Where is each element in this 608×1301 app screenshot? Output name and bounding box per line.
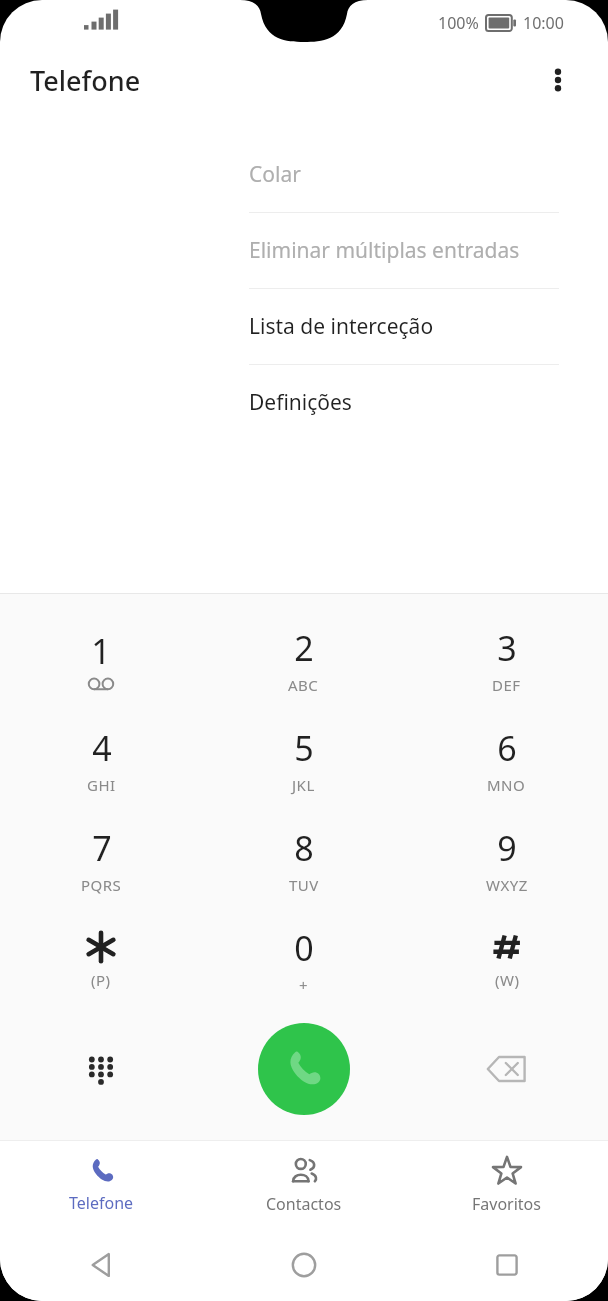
- staticText: 100%: [438, 12, 479, 34]
- button[interactable]: 7: [0, 810, 202, 910]
- staticText: PQRS: [81, 875, 122, 895]
- button[interactable]: 2: [202, 610, 405, 710]
- staticText: Lista de interceção: [249, 312, 434, 341]
- staticText: Favoritos: [472, 1193, 541, 1215]
- button[interactable]: Contactos: [202, 1141, 405, 1229]
- staticText: (W): [495, 970, 520, 990]
- button[interactable]: 9: [405, 810, 608, 910]
- button[interactable]: Telefone: [0, 1141, 202, 1229]
- staticText: JKL: [292, 775, 315, 795]
- button[interactable]: (W): [405, 910, 608, 1010]
- button[interactable]: 6: [405, 710, 608, 810]
- staticText: Telefone: [30, 62, 141, 99]
- staticText: 2: [294, 625, 314, 671]
- staticText: 3: [497, 625, 517, 671]
- staticText: Contactos: [266, 1193, 342, 1215]
- button[interactable]: Home: [202, 1229, 405, 1301]
- button[interactable]: Hide keypad: [0, 1010, 202, 1128]
- staticText: WXYZ: [486, 875, 528, 895]
- button[interactable]: (P): [0, 910, 202, 1010]
- staticText: +: [299, 975, 309, 995]
- staticText: 1: [91, 628, 111, 674]
- staticText: TUV: [289, 875, 319, 895]
- button[interactable]: Lista de interceção: [224, 289, 584, 364]
- button[interactable]: 1: [0, 610, 202, 710]
- staticText: 9: [497, 825, 517, 871]
- staticText: Telefone: [69, 1192, 134, 1214]
- staticText: 8: [294, 825, 314, 871]
- staticText: (P): [91, 970, 111, 990]
- staticText: Eliminar múltiplas entradas: [249, 236, 520, 265]
- staticText: 4: [92, 725, 112, 771]
- button[interactable]: Definições: [224, 365, 584, 440]
- staticText: 0: [294, 925, 314, 971]
- button[interactable]: 0: [202, 910, 405, 1010]
- button[interactable]: Colar: [224, 137, 584, 212]
- button[interactable]: Eliminar múltiplas entradas: [224, 213, 584, 288]
- staticText: 5: [294, 725, 314, 771]
- staticText: GHI: [87, 775, 116, 795]
- button[interactable]: 8: [202, 810, 405, 910]
- staticText: 10:00: [523, 12, 564, 34]
- button[interactable]: 5: [202, 710, 405, 810]
- button[interactable]: Backspace: [405, 1010, 608, 1128]
- button[interactable]: Call: [258, 1023, 350, 1115]
- staticText: 6: [497, 725, 517, 771]
- button[interactable]: Back: [0, 1229, 202, 1301]
- staticText: ABC: [288, 675, 319, 695]
- button[interactable]: 4: [0, 710, 202, 810]
- button[interactable]: 3: [405, 610, 608, 710]
- button[interactable]: Recents: [405, 1229, 608, 1301]
- button[interactable]: Favoritos: [405, 1141, 608, 1229]
- staticText: 7: [92, 825, 112, 871]
- staticText: DEF: [492, 675, 521, 695]
- staticText: Definições: [249, 388, 352, 417]
- staticText: Colar: [249, 160, 301, 189]
- staticText: MNO: [487, 775, 526, 795]
- button[interactable]: More options: [534, 56, 582, 104]
